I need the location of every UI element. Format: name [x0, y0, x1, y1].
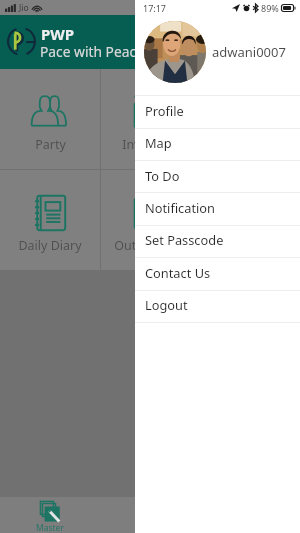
staticText: Map	[145, 134, 172, 151]
staticText: Party	[35, 136, 66, 153]
button[interactable]: Inventory	[101, 69, 200, 169]
staticText: Outstanding	[114, 237, 188, 254]
button[interactable]: Reports	[201, 69, 300, 169]
staticText: 17:17	[143, 2, 167, 14]
staticText: Pace with Peace	[40, 42, 144, 61]
staticText: adwani0007	[212, 43, 286, 61]
button[interactable]: Profile	[135, 96, 300, 128]
button[interactable]: Notification	[135, 193, 300, 225]
button[interactable]: Setting	[201, 170, 300, 270]
button[interactable]: Contact Us	[135, 258, 300, 290]
staticText: Daily Diary	[18, 237, 82, 254]
staticText: Profile	[145, 102, 184, 119]
staticText: Contact Us	[145, 264, 211, 281]
button[interactable]: Party	[0, 69, 100, 169]
button[interactable]: Map	[135, 128, 300, 160]
button[interactable]: Logout	[135, 290, 300, 322]
button[interactable]: Master	[0, 497, 100, 533]
staticText: Master	[36, 522, 64, 533]
staticText: PWP	[41, 24, 75, 44]
staticText: 89%	[261, 2, 279, 14]
staticText: Notification	[145, 199, 215, 216]
button[interactable]: Outstanding	[101, 170, 200, 270]
button[interactable]: Entry	[100, 497, 200, 533]
button[interactable]: Daily Diary	[0, 170, 100, 270]
button[interactable]: Set Passcode	[135, 225, 300, 257]
staticText: To Do	[145, 167, 180, 184]
staticText: Set Passcode	[145, 231, 224, 248]
button[interactable]: To Do	[135, 161, 300, 193]
staticText: Jio	[19, 2, 29, 14]
staticText: Logout	[145, 296, 188, 313]
staticText: Inventory	[122, 136, 179, 153]
